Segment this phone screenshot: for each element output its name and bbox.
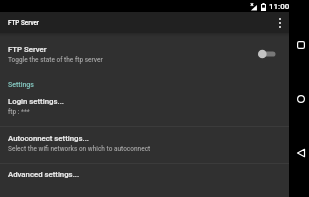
staticText: Login settings...	[8, 97, 64, 106]
staticText: FTP Server	[8, 19, 40, 26]
staticText: 11:00	[269, 2, 290, 11]
staticText: FTP Server	[8, 45, 47, 54]
staticText: Settings	[8, 81, 34, 89]
staticText: Toggle the state of the ftp server	[8, 56, 103, 64]
button[interactable]: More options	[270, 12, 289, 33]
button[interactable]: FTP Server	[0, 33, 289, 79]
button[interactable]: Home	[291, 89, 309, 109]
staticText: Select the wifi networks on which to aut…	[8, 145, 151, 153]
staticText: ftp : ***	[8, 108, 30, 116]
button[interactable]: Autoconnect settings...	[0, 128, 289, 164]
button[interactable]: Recents	[291, 35, 309, 55]
button[interactable]: Back	[291, 143, 309, 163]
button[interactable]: Advanced settings...	[0, 165, 289, 197]
button[interactable]: Toggle ftp server	[258, 46, 279, 62]
staticText: Advanced settings...	[8, 170, 80, 179]
button[interactable]: Login settings...	[0, 94, 289, 127]
staticText: Autoconnect settings...	[8, 134, 89, 143]
